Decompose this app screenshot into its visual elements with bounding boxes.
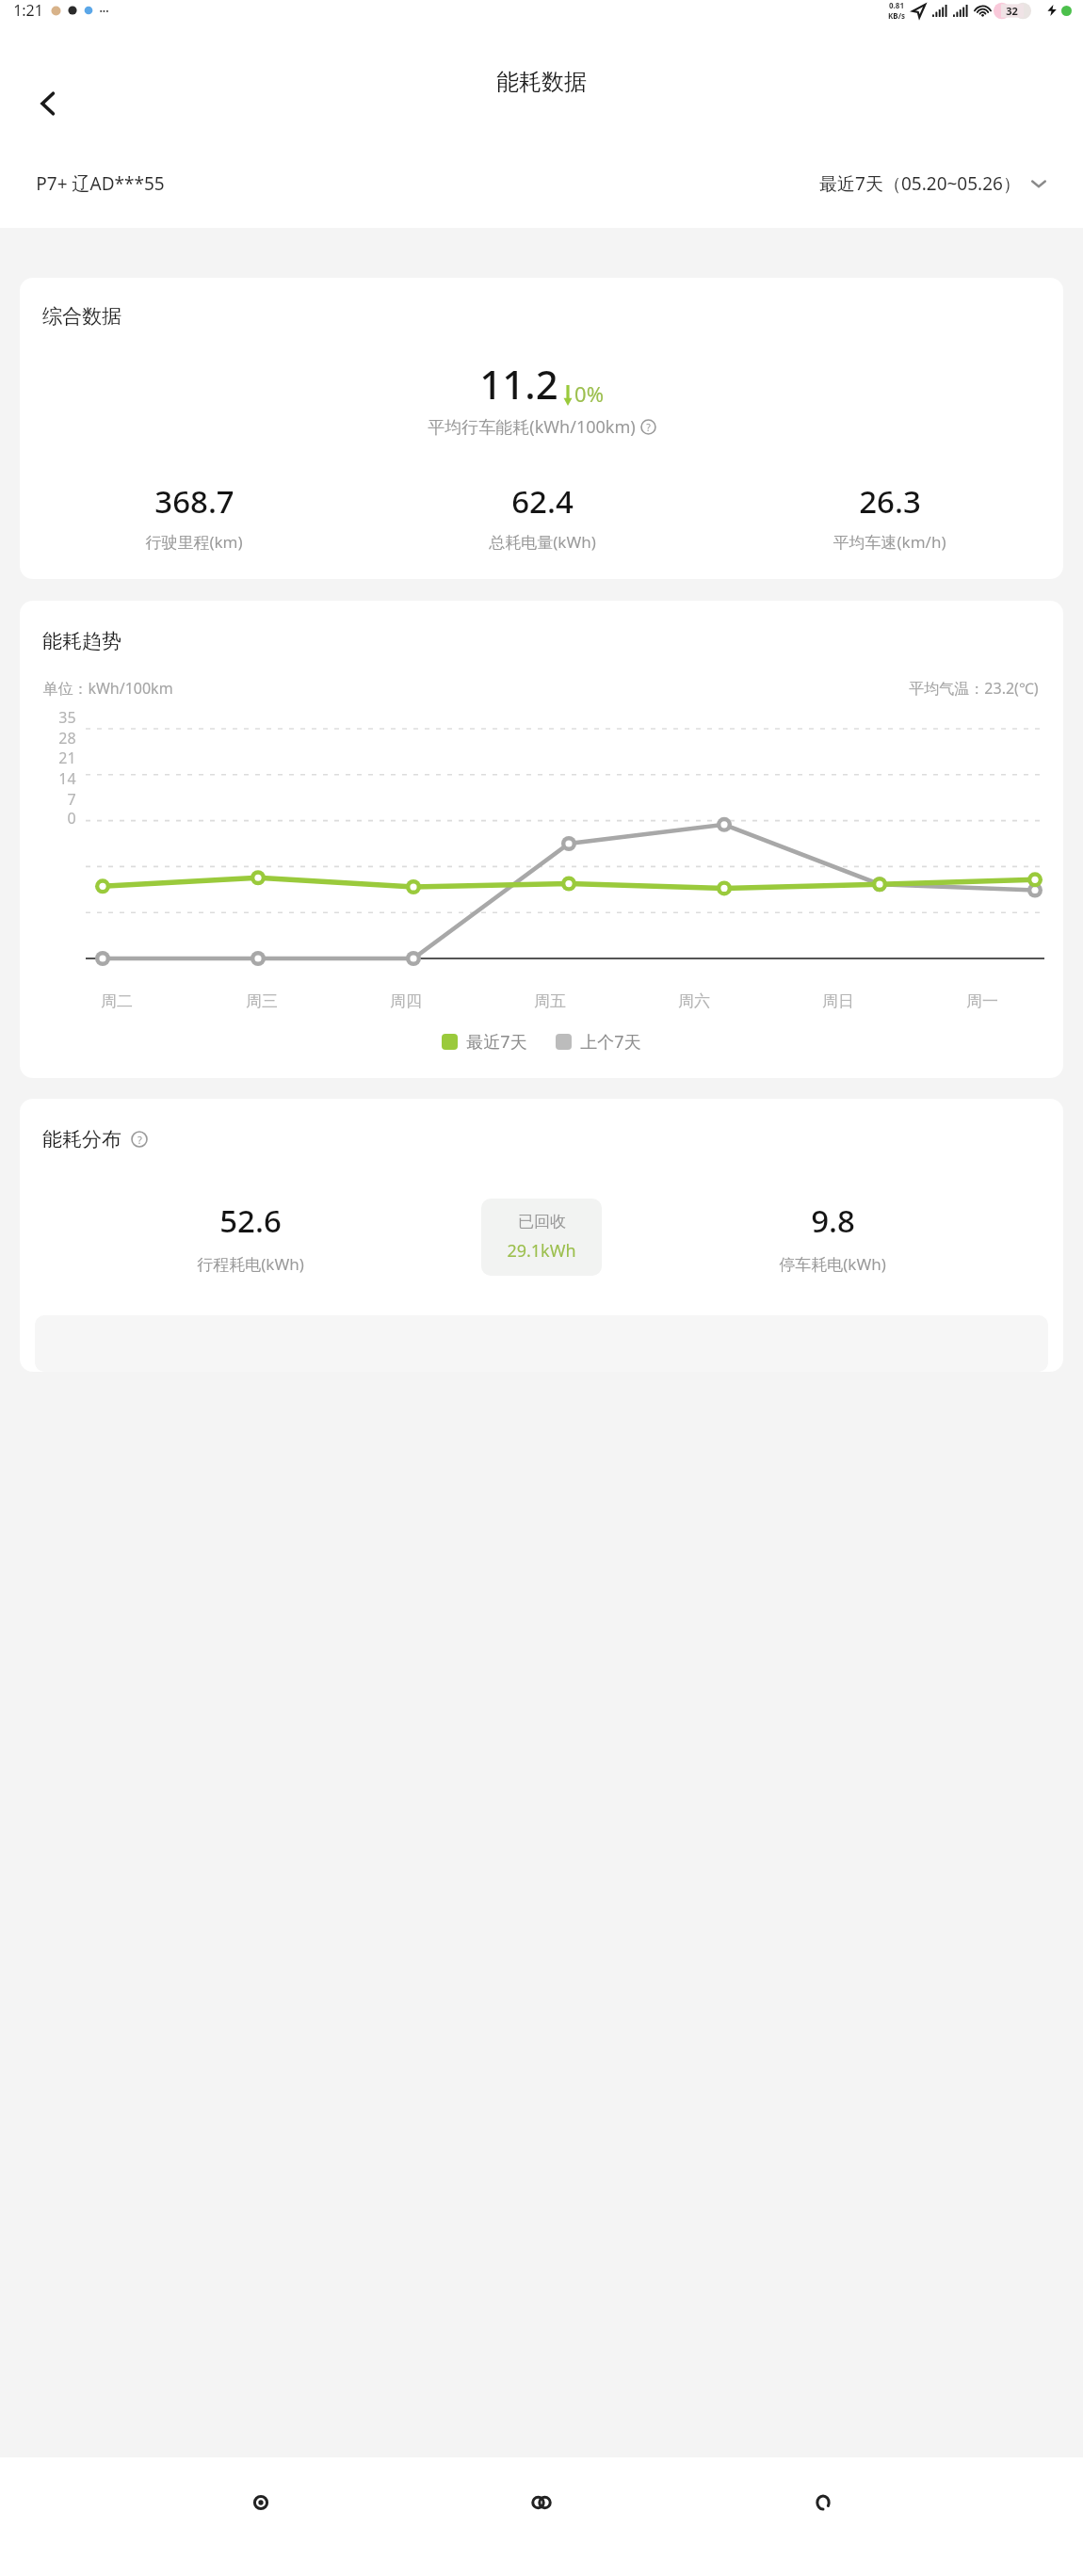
staticText: 行程耗电(kWh) [197, 1253, 304, 1275]
staticText: 周四 [390, 991, 422, 1011]
staticText: 28 [58, 728, 76, 749]
staticText: 总耗电量(kWh) [489, 531, 596, 553]
staticText: 单位：kWh/100km [42, 678, 173, 699]
staticText: 已回收 [518, 1212, 566, 1232]
button[interactable]: 最近7天 [442, 1030, 527, 1054]
staticText: 29.1kWh [507, 1239, 576, 1263]
button[interactable]: 最近7天（05.20~05.26） [819, 171, 1047, 196]
staticText: 7 [67, 789, 76, 810]
staticText: 1:21 [13, 0, 43, 21]
staticText: 能耗趋势 [42, 629, 121, 653]
staticText: 21 [58, 748, 76, 768]
staticText: 周二 [101, 991, 133, 1011]
staticText: 上个7天 [580, 1030, 641, 1054]
staticText: 9.8 [811, 1199, 855, 1242]
staticText: 综合数据 [42, 304, 121, 329]
button[interactable]: 综合数据 [20, 278, 1063, 579]
staticText: ··· [99, 3, 109, 18]
staticText: 11.2 [479, 357, 558, 411]
staticText: ? [137, 1133, 142, 1147]
staticText: 周五 [534, 991, 566, 1011]
staticText: 最近7天（05.20~05.26） [819, 171, 1021, 196]
staticText: 平均行车能耗(kWh/100km) [428, 415, 636, 439]
button[interactable]: 上个7天 [556, 1030, 641, 1054]
staticText: 能耗数据 [496, 68, 587, 96]
staticText: 368.7 [154, 480, 234, 523]
staticText: 平均气温：23.2(℃) [909, 678, 1039, 699]
button[interactable]: Back [24, 80, 72, 127]
staticText: 52.6 [219, 1199, 282, 1242]
staticText: 停车耗电(kWh) [779, 1253, 886, 1275]
staticText: KB/s [888, 10, 905, 21]
button[interactable]: P7+ 辽AD***55 [36, 171, 165, 196]
staticText: 0% [574, 379, 604, 408]
staticText: 行驶里程(km) [145, 531, 243, 553]
staticText: 周日 [822, 991, 854, 1011]
staticText: 0 [67, 808, 76, 829]
staticText: 最近7天 [466, 1030, 527, 1054]
staticText: P7+ 辽AD***55 [36, 171, 165, 196]
staticText: 0.81 [889, 0, 904, 10]
staticText: 能耗分布 [42, 1127, 121, 1151]
button[interactable]: Home [521, 2482, 562, 2523]
staticText: 26.3 [859, 480, 921, 523]
staticText: 平均车速(km/h) [832, 531, 946, 553]
button[interactable]: 能耗分布 [20, 1099, 1063, 1372]
button[interactable]: 能耗趋势 [20, 601, 1063, 1078]
button[interactable]: Back [802, 2482, 844, 2523]
staticText: 周一 [966, 991, 998, 1011]
staticText: 周三 [246, 991, 278, 1011]
staticText: 62.4 [511, 480, 574, 523]
staticText: 32 [1006, 4, 1018, 18]
staticText: 35 [58, 707, 76, 728]
staticText: 14 [58, 768, 76, 789]
staticText: 周六 [678, 991, 710, 1011]
staticText: ? [646, 421, 651, 434]
button[interactable]: Recents [240, 2482, 282, 2523]
